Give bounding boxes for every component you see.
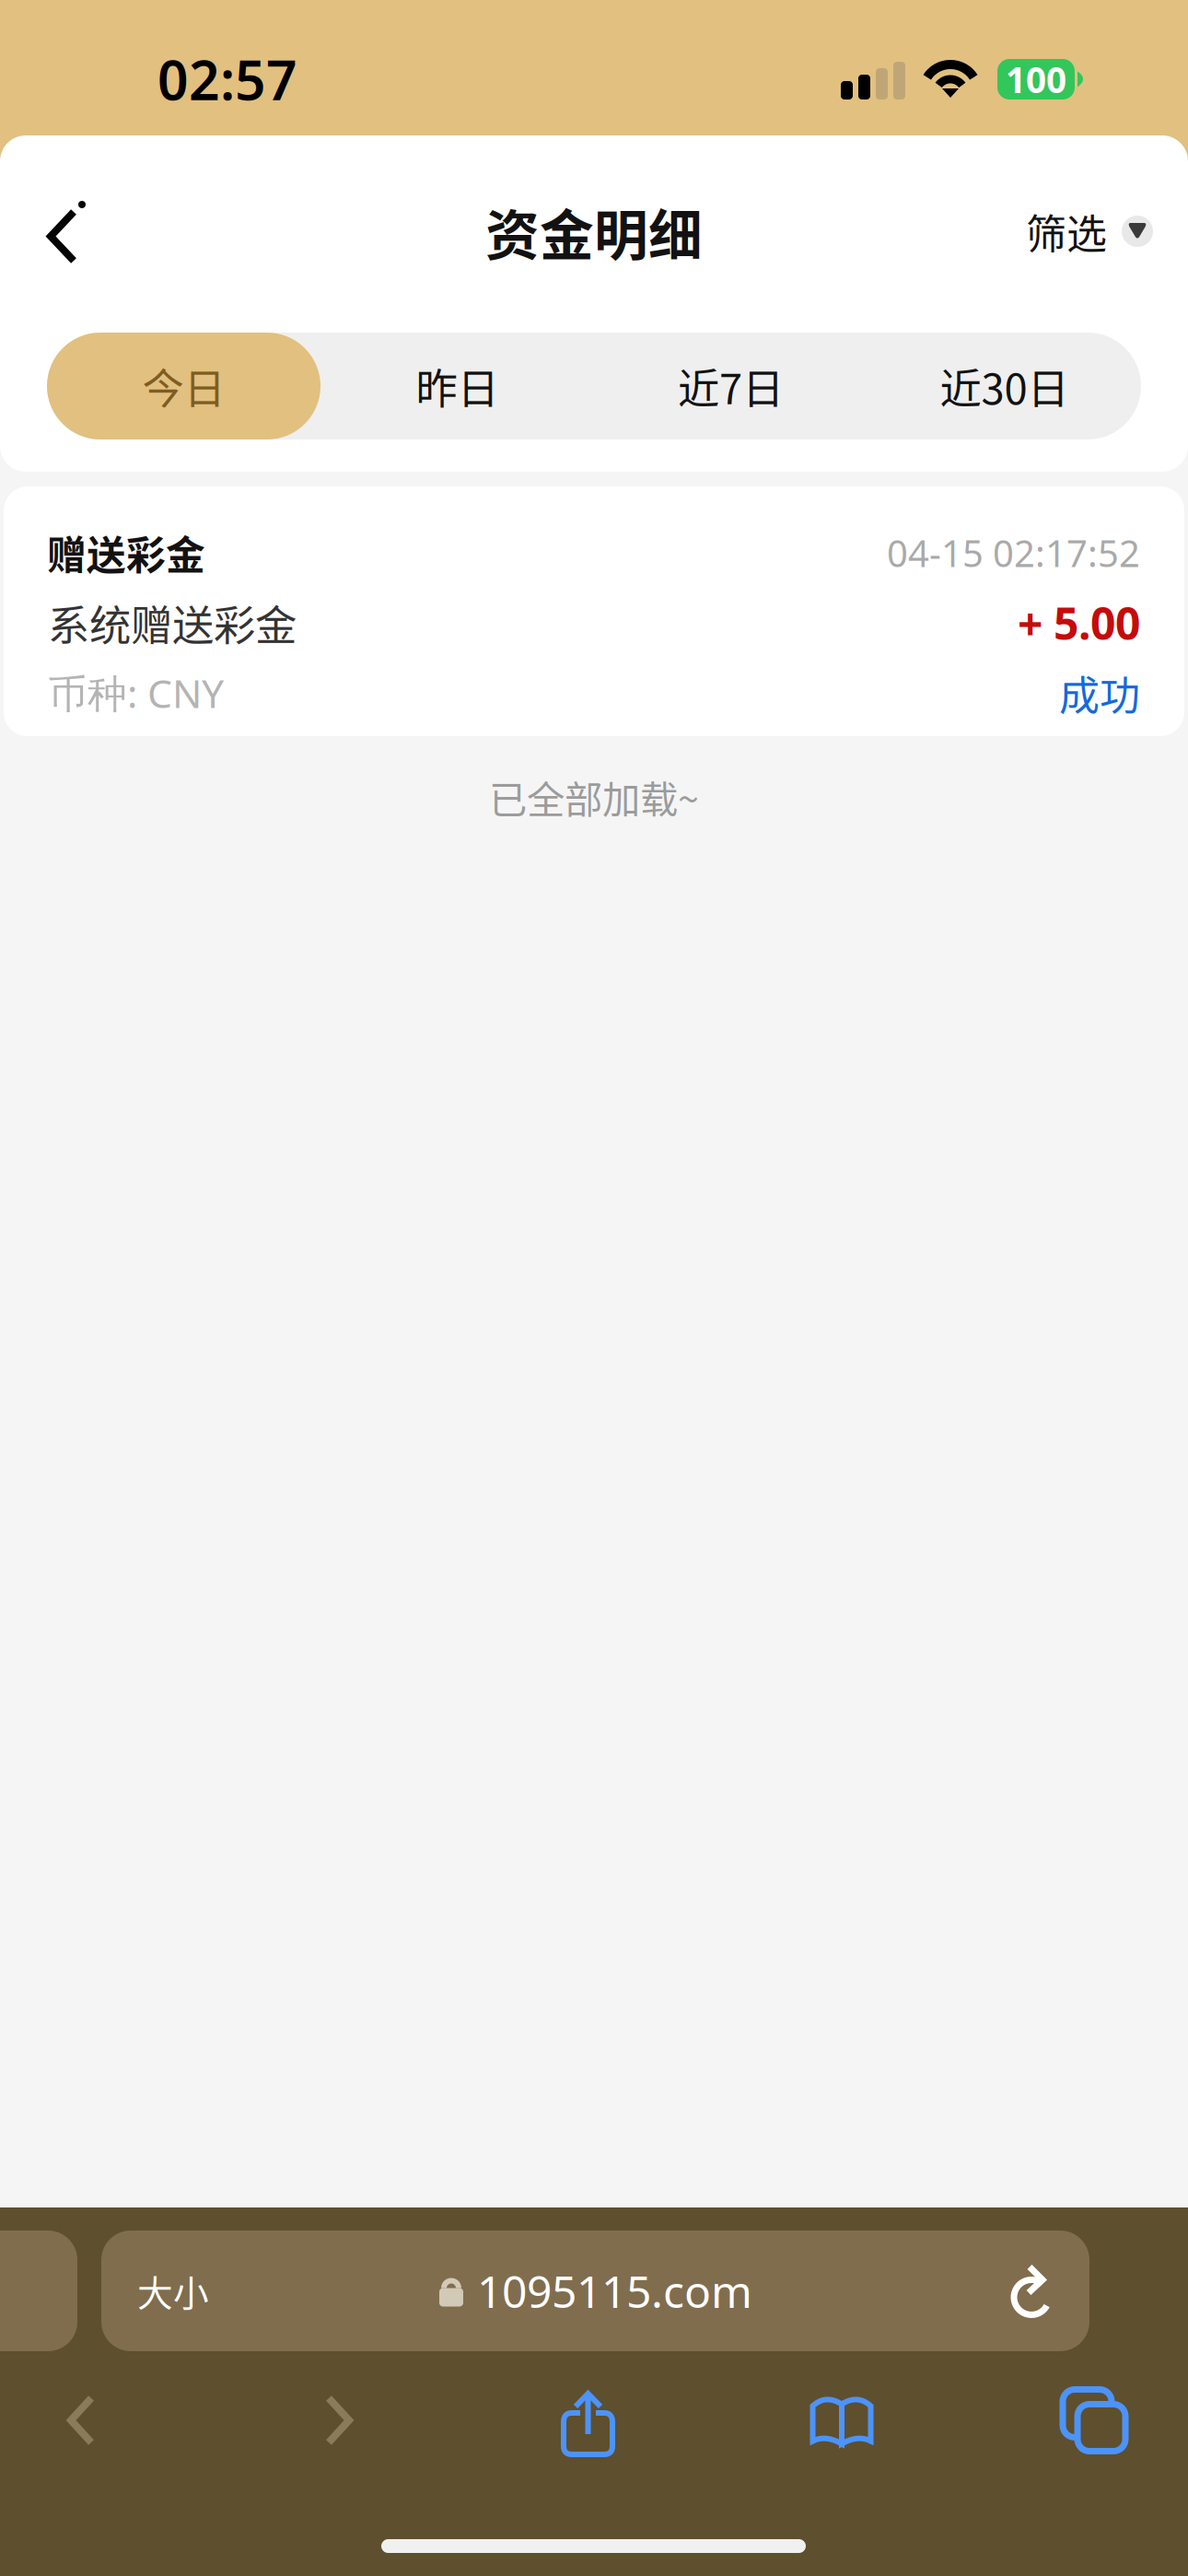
staticText: 赠送彩金 xyxy=(47,524,205,581)
button[interactable]: Bookmarks xyxy=(773,2344,911,2497)
staticText: 筛选 xyxy=(1026,202,1107,261)
staticText: + 5.00 xyxy=(1018,593,1140,652)
staticText: 大小 xyxy=(137,2265,209,2317)
staticText: 币种: CNY xyxy=(48,667,224,719)
button[interactable]: 赠送彩金 xyxy=(4,486,1184,736)
button[interactable]: 近7日 xyxy=(594,333,868,439)
button[interactable]: 今日 xyxy=(47,333,320,439)
button[interactable]: Forward xyxy=(270,2344,408,2497)
staticText: 昨日 xyxy=(416,356,499,416)
staticText: 成功 xyxy=(1059,663,1140,722)
staticText: 04-15 02:17:52 xyxy=(887,528,1140,577)
staticText: 近7日 xyxy=(678,356,784,416)
button[interactable]: 大小 xyxy=(101,2231,1089,2351)
staticText: 系统赠送彩金 xyxy=(48,593,297,653)
button[interactable]: 昨日 xyxy=(320,333,594,439)
staticText: 近30日 xyxy=(940,356,1069,416)
button[interactable]: Share xyxy=(519,2344,658,2497)
staticText: 1095115.com xyxy=(477,2261,752,2320)
button[interactable]: 返回 xyxy=(0,180,120,290)
button[interactable]: 近30日 xyxy=(868,333,1141,439)
staticText: 已全部加载~ xyxy=(489,769,699,825)
button[interactable]: Back xyxy=(12,2344,150,2497)
button[interactable]: Tabs xyxy=(1025,2344,1163,2497)
staticText: 今日 xyxy=(142,356,225,416)
staticText: 资金明细 xyxy=(485,193,703,271)
staticText: 02:57 xyxy=(157,43,297,115)
button[interactable]: 筛选 xyxy=(1007,189,1172,274)
staticText: 100 xyxy=(1006,56,1066,103)
